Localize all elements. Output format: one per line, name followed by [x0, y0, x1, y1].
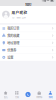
- button[interactable]: 地址管理: [0, 39, 56, 47]
- staticText: ID: 8800 1234: [12, 16, 26, 19]
- button[interactable]: 优惠券: [0, 47, 56, 54]
- staticText: 地址管理: [7, 40, 19, 45]
- button[interactable]: 发布: [22, 92, 34, 98]
- button[interactable]: 我的订单: [0, 25, 56, 32]
- staticText: 优惠券: [7, 48, 16, 52]
- staticText: 我的收藏: [7, 33, 19, 38]
- staticText: 用户昵称: [12, 10, 28, 15]
- staticText: 首页: [4, 95, 8, 99]
- staticText: 我的: [25, 2, 31, 7]
- button[interactable]: 我的: [45, 91, 56, 99]
- button[interactable]: 用户昵称: [0, 6, 56, 23]
- staticText: 我的订单: [7, 26, 19, 31]
- button[interactable]: 我的收藏: [0, 32, 56, 39]
- staticText: 我的: [48, 95, 52, 99]
- staticText: 购物车: [36, 95, 42, 99]
- staticText: 设置: [7, 55, 13, 60]
- button[interactable]: 购物车: [34, 91, 45, 99]
- button[interactable]: 设置: [0, 54, 56, 61]
- button[interactable]: 分类: [11, 91, 22, 99]
- button[interactable]: 首页: [0, 91, 11, 99]
- staticText: 分类: [15, 95, 19, 99]
